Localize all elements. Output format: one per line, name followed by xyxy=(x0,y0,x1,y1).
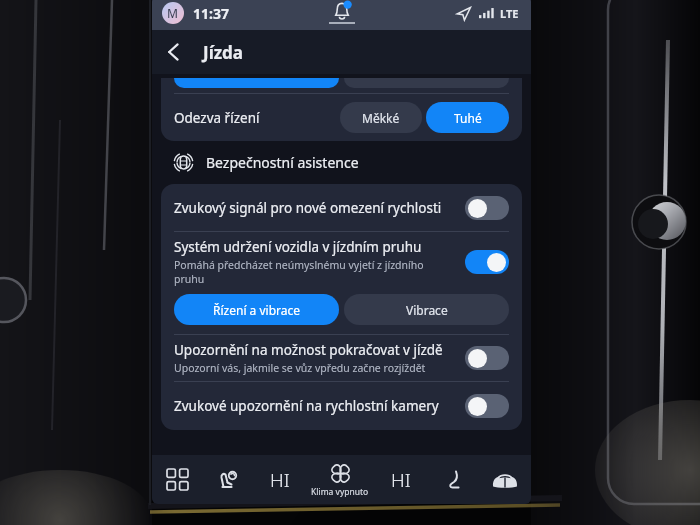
button[interactable]: Driver seat climate xyxy=(203,455,254,504)
staticText: Upozornění na možnost pokračovat v jízdě xyxy=(174,341,443,359)
staticText: Zvukové upozornění na rychlostní kamery xyxy=(174,397,439,415)
staticText: Systém udržení vozidla v jízdním pruhu xyxy=(174,238,422,256)
staticText: LTE xyxy=(500,6,519,21)
staticText: 11:37 xyxy=(193,4,229,23)
button[interactable]: Back xyxy=(152,30,196,74)
button[interactable]: Off xyxy=(465,346,509,370)
button[interactable]: Profile xyxy=(162,2,184,24)
staticText: HI xyxy=(270,467,290,493)
button[interactable]: Off xyxy=(465,196,509,220)
button[interactable]: Zvukové upozornění na rychlostní kamery xyxy=(161,382,522,430)
staticText: Odezva řízení xyxy=(174,109,260,127)
button[interactable]: Climate off xyxy=(305,455,375,504)
button[interactable]: Notifications xyxy=(322,0,362,28)
staticText: Bezpečnostní asistence xyxy=(206,153,359,172)
staticText: M xyxy=(167,5,179,21)
button[interactable]: Tuhé xyxy=(426,102,509,133)
button[interactable]: Systém udržení vozidla v jízdním pruhu xyxy=(161,232,522,292)
button[interactable]: Zvukový signál pro nové omezení rychlost… xyxy=(161,184,522,231)
button[interactable] xyxy=(344,78,509,88)
button[interactable]: Upozornění na možnost pokračovat v jízdě xyxy=(161,335,522,381)
staticText: Pomáhá předcházet neúmyslnému vyjetí z j… xyxy=(174,258,455,286)
staticText: Tuhé xyxy=(454,110,482,126)
staticText: Jízda xyxy=(203,41,244,64)
button[interactable]: Řízení a vibrace xyxy=(174,294,339,325)
staticText: Klima vypnuto xyxy=(311,486,369,498)
staticText: Vibrace xyxy=(406,302,448,318)
button[interactable]: Passenger temperature HI xyxy=(375,455,427,504)
button[interactable] xyxy=(174,78,339,88)
button[interactable]: Driver temperature HI xyxy=(254,455,305,504)
staticText: Zvukový signál pro nové omezení rychlost… xyxy=(174,199,442,217)
button[interactable]: Passenger seat xyxy=(427,455,479,504)
button[interactable]: Vibrace xyxy=(344,294,509,325)
staticText: Měkké xyxy=(362,110,400,126)
button[interactable]: Off xyxy=(465,394,509,418)
staticText: HI xyxy=(391,467,411,493)
button[interactable]: Apps xyxy=(152,455,203,504)
button[interactable]: Vehicle xyxy=(479,455,531,504)
button[interactable]: Měkké xyxy=(340,102,422,133)
staticText: Řízení a vibrace xyxy=(213,302,301,318)
button[interactable]: On xyxy=(465,250,509,274)
staticText: Upozorní vás, jakmile se vůz vpředu začn… xyxy=(174,361,426,375)
